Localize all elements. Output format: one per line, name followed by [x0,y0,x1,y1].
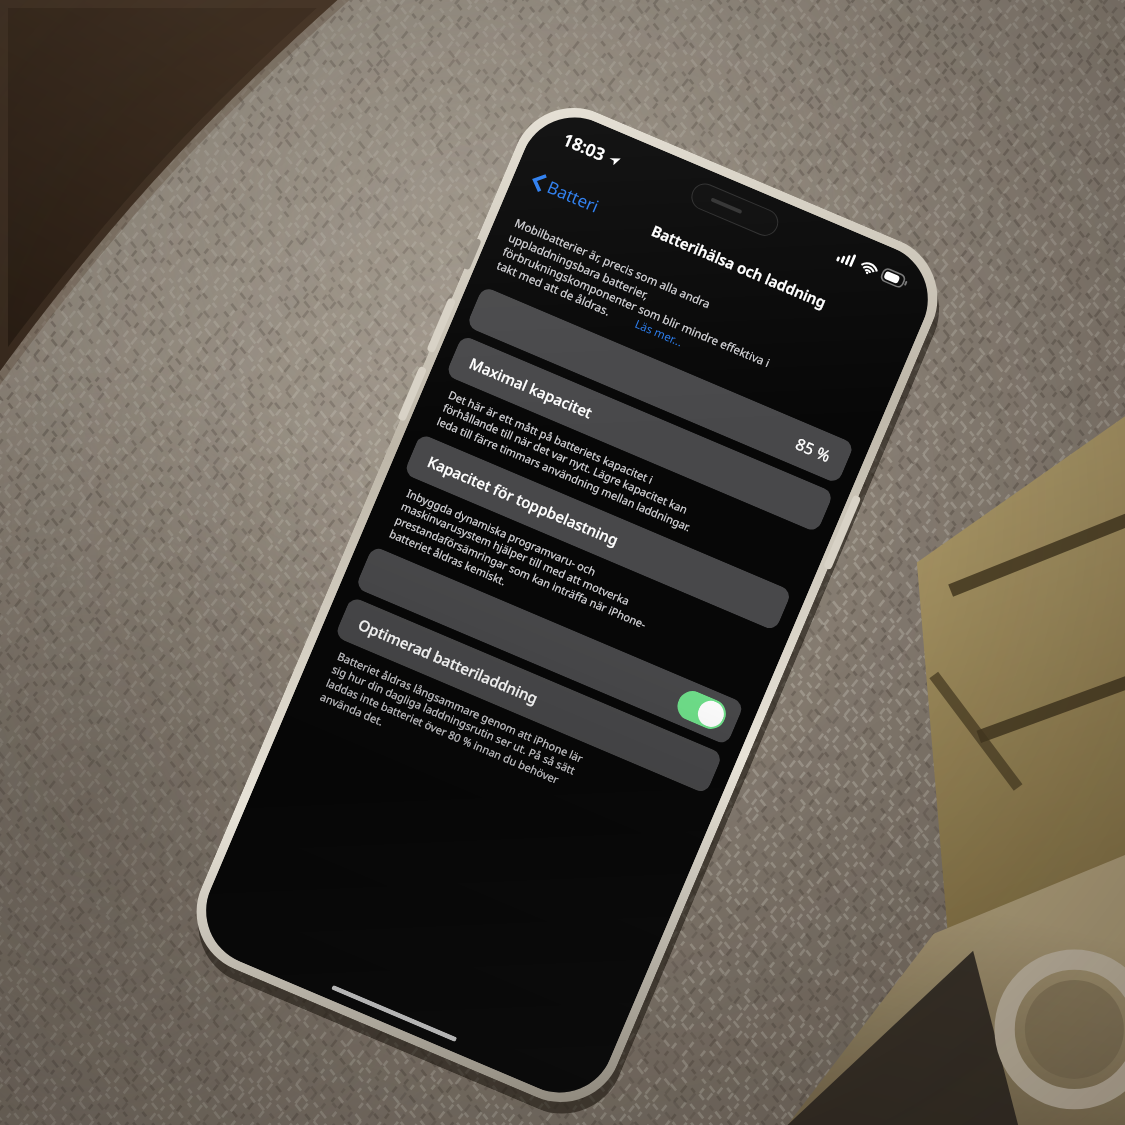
button[interactable]: 85 % [466,286,855,484]
button[interactable]: Läs mer... [632,316,686,351]
staticText: Batteri [544,175,602,218]
button[interactable]: Batteri [522,162,610,224]
button[interactable]: Maximal kapacitet [445,335,834,533]
staticText: Batterihälsa och laddning [649,220,829,312]
button[interactable]: Optimerad batteriladdning på [355,545,745,746]
staticText: Det här är ett mått på batteriets kapaci… [435,387,705,536]
staticText: Batteriet åldras långsammare genom att i… [318,648,586,807]
staticText: 18:03 [560,128,609,166]
staticText: 85 % [792,433,834,467]
staticText: Kapacitet för toppbelastning [425,451,622,550]
staticText: Inbyggda dynamiska programvaru- och mask… [387,485,660,646]
button[interactable]: Optimerad batteriladdning på [673,686,730,734]
staticText: Maximal kapacitet [466,353,596,423]
staticText: Optimerad batteriladdning [355,614,542,708]
button[interactable]: Kapacitet för toppbelastning [403,433,792,631]
button[interactable]: Optimerad batteriladdning [334,596,723,794]
staticText: Mobilbatterier är, precis som alla andra… [495,215,785,384]
